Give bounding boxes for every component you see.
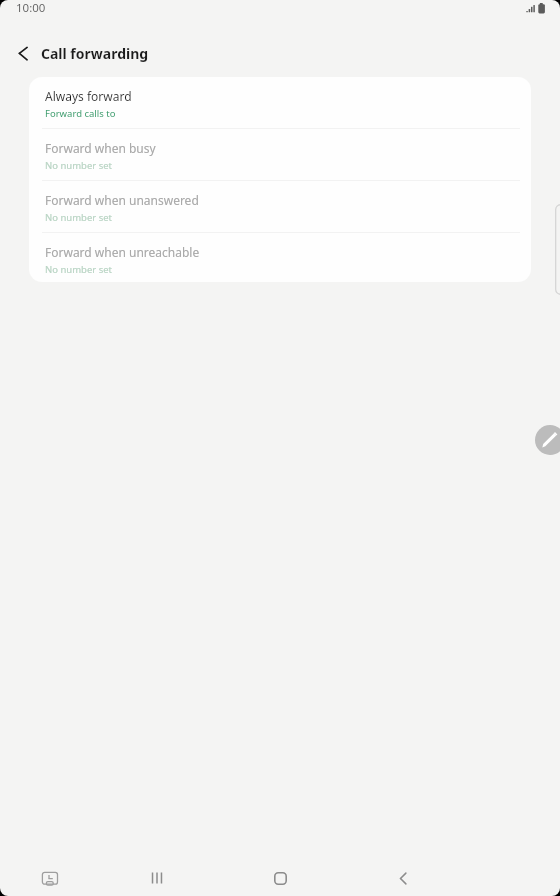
staticText: 10:00 (16, 0, 46, 16)
staticText: Call forwarding (41, 44, 149, 63)
button[interactable]: Forward when unreachable (29, 233, 531, 282)
button[interactable]: Always forward (29, 77, 531, 128)
button[interactable]: Navigate up (9, 39, 37, 67)
staticText: Forward calls to (45, 107, 116, 120)
staticText: Always forward (45, 88, 132, 104)
staticText: Forward when busy (45, 140, 156, 156)
button[interactable]: Edit (535, 425, 560, 455)
staticText: No number set (45, 263, 112, 276)
button[interactable]: Recent apps (137, 858, 177, 896)
staticText: Forward when unreachable (45, 244, 200, 260)
button[interactable]: Forward when unanswered (29, 181, 531, 232)
button[interactable]: Hide keyboard (30, 858, 70, 896)
staticText: No number set (45, 159, 112, 172)
button[interactable]: Back (383, 858, 423, 896)
button[interactable]: Home (260, 858, 300, 896)
staticText: Forward when unanswered (45, 192, 199, 208)
button[interactable]: Forward when busy (29, 129, 531, 180)
staticText: No number set (45, 211, 112, 224)
